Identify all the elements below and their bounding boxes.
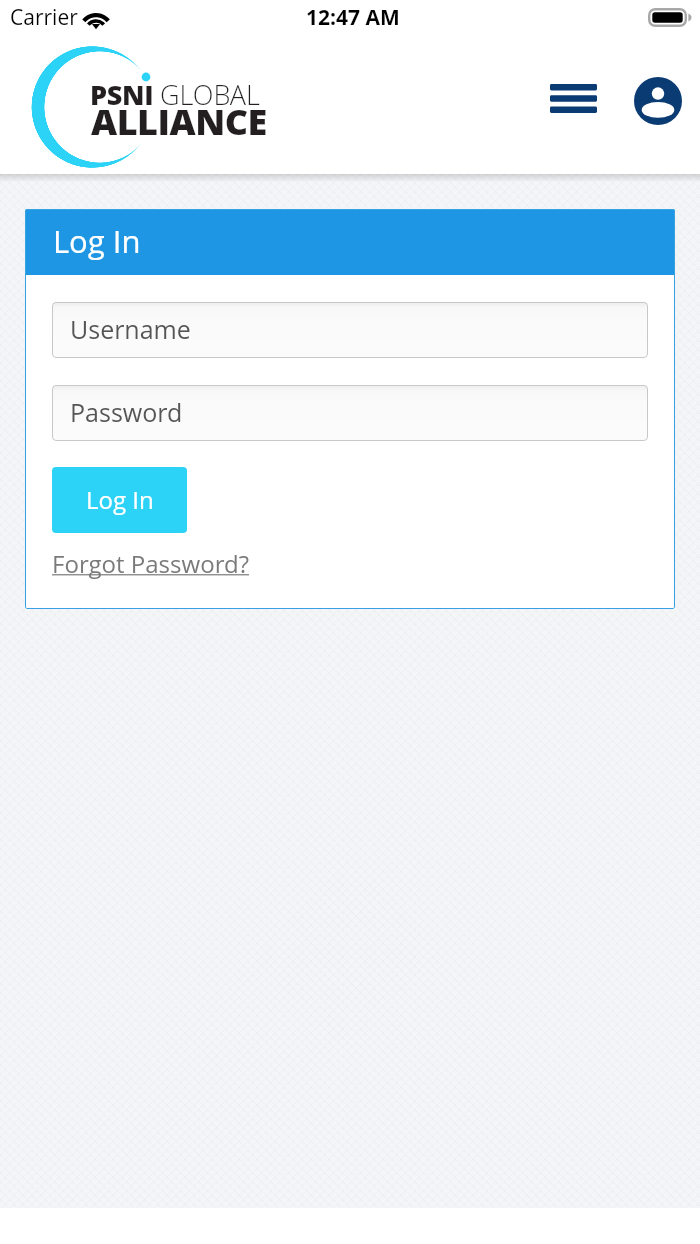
staticText: 12:47 AM [306,3,400,32]
button[interactable]: Password [52,385,648,441]
button[interactable]: Account [620,63,696,139]
staticText: Carrier [10,3,78,32]
staticText: Log In [86,483,154,516]
button[interactable]: Log In [52,467,187,533]
staticText: Log In [53,220,141,262]
staticText: ALLIANCE [91,97,267,146]
staticText: PSNI [90,76,154,113]
staticText: GLOBAL [160,76,260,113]
staticText: Password [70,395,183,429]
button[interactable]: Menu [535,60,611,136]
button[interactable]: Username [52,302,648,358]
button[interactable]: Forgot Password? [52,547,249,580]
staticText: Username [70,312,191,346]
